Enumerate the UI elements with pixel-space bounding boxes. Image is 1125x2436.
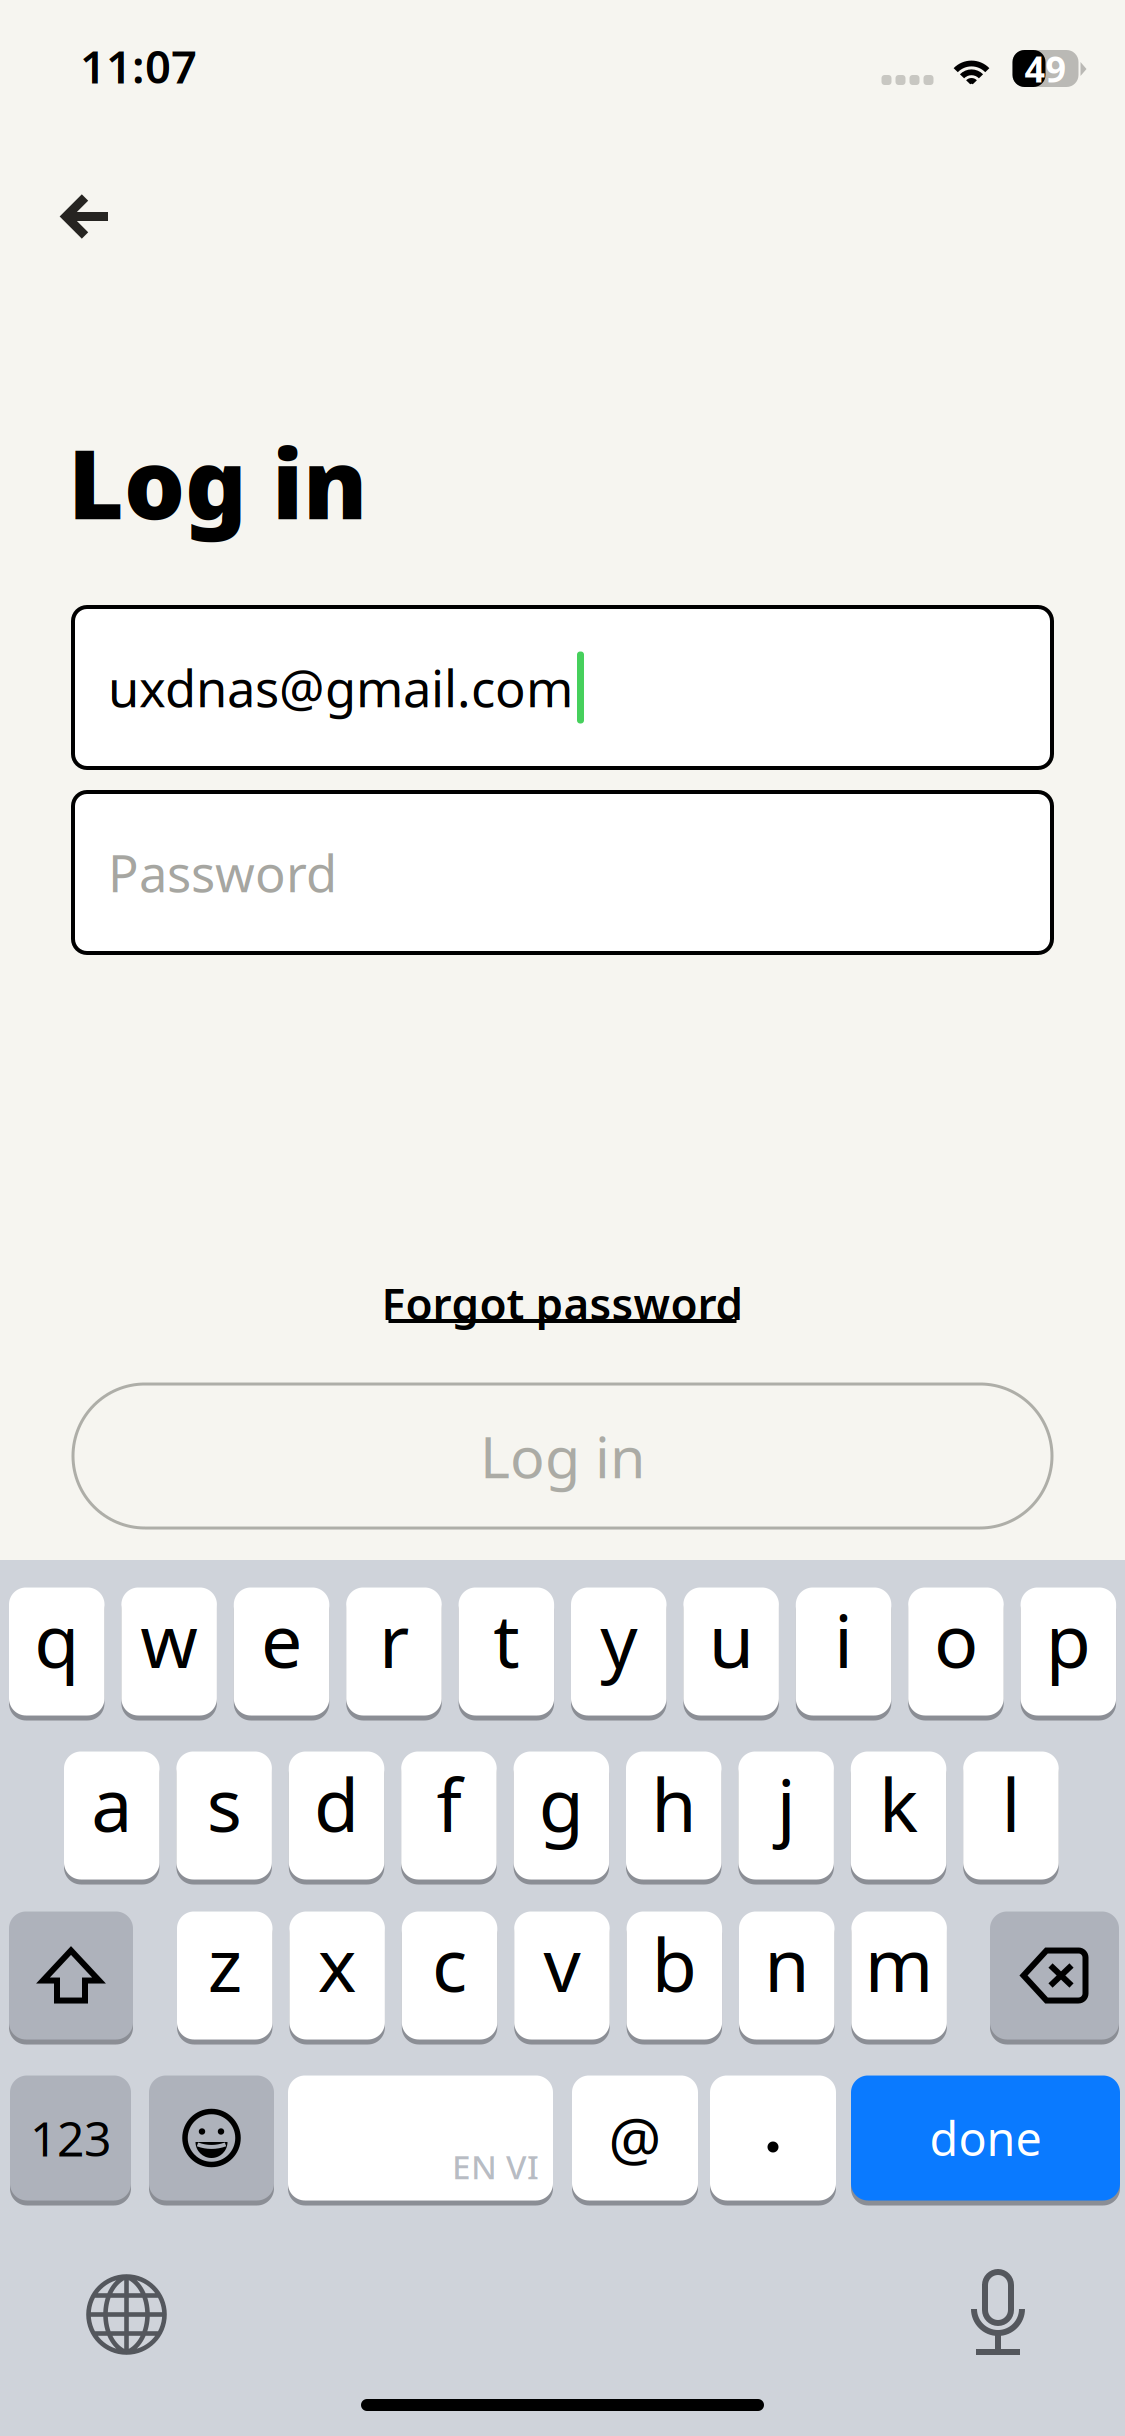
button[interactable]: u [683, 1585, 779, 1718]
staticText: k [879, 1755, 918, 1852]
button[interactable]: Period [710, 2073, 836, 2203]
staticText: a [91, 1755, 132, 1852]
button[interactable]: a [64, 1749, 159, 1882]
staticText: c [432, 1915, 467, 2012]
staticText: m [865, 1915, 934, 2012]
staticText: s [207, 1755, 242, 1852]
staticText: t [493, 1591, 519, 1688]
button[interactable]: j [738, 1749, 834, 1882]
staticText: p [1046, 1591, 1091, 1688]
button[interactable]: Forgot password [300, 1277, 825, 1333]
button[interactable]: v [514, 1909, 610, 2042]
staticText: q [34, 1591, 79, 1688]
button[interactable]: r [346, 1585, 442, 1718]
staticText: l [1001, 1755, 1020, 1852]
button[interactable]: t [459, 1585, 554, 1718]
staticText: y [600, 1591, 637, 1688]
button[interactable]: Shift [9, 1909, 133, 2042]
staticText: 49 [1024, 45, 1066, 92]
button[interactable]: Delete [990, 1909, 1119, 2042]
staticText: done [929, 2107, 1041, 2169]
button[interactable]: d [289, 1749, 384, 1882]
staticText: Forgot password [381, 1274, 743, 1332]
staticText: n [764, 1915, 809, 2012]
button[interactable]: q [9, 1585, 104, 1718]
staticText: 123 [30, 2106, 111, 2170]
staticText: d [314, 1755, 359, 1852]
staticText: x [318, 1915, 357, 2012]
button[interactable]: Space [288, 2073, 553, 2203]
button[interactable]: x [289, 1909, 385, 2042]
button[interactable]: @ [572, 2073, 698, 2203]
button[interactable]: Log in [73, 1384, 1052, 1528]
staticText: u [709, 1591, 754, 1688]
button[interactable]: y [571, 1585, 666, 1718]
button[interactable]: n [739, 1909, 834, 2042]
staticText: b [652, 1915, 697, 2012]
staticText: Log in [480, 1418, 645, 1494]
button[interactable]: g [514, 1749, 609, 1882]
button[interactable]: Emoji [149, 2073, 274, 2203]
button[interactable]: l [963, 1749, 1059, 1882]
staticText: e [261, 1591, 302, 1688]
button[interactable]: p [1021, 1585, 1116, 1718]
staticText: 11:07 [80, 36, 197, 96]
button[interactable]: h [626, 1749, 721, 1882]
button[interactable]: z [177, 1909, 272, 2042]
staticText: w [140, 1591, 198, 1688]
staticText: o [934, 1591, 978, 1688]
button[interactable]: m [851, 1909, 947, 2042]
button[interactable]: Next keyboard [86, 2274, 167, 2355]
staticText: f [436, 1755, 461, 1852]
staticText: v [543, 1915, 580, 2012]
button[interactable]: s [176, 1749, 272, 1882]
button[interactable]: o [908, 1585, 1004, 1718]
button[interactable]: Back [38, 169, 134, 265]
staticText: Log in [68, 418, 367, 546]
button[interactable]: f [401, 1749, 497, 1882]
button[interactable]: Dictate [970, 2269, 1026, 2355]
button[interactable]: done [851, 2073, 1120, 2203]
staticText: j [777, 1755, 796, 1852]
staticText: g [539, 1755, 584, 1852]
staticText: z [208, 1915, 242, 2012]
button[interactable]: i [796, 1585, 891, 1718]
staticText: h [651, 1755, 696, 1852]
button[interactable]: e [234, 1585, 329, 1718]
button[interactable]: k [851, 1749, 946, 1882]
staticText: uxdnas@gmail.com [108, 654, 573, 721]
staticText: i [834, 1591, 853, 1688]
button[interactable]: b [627, 1909, 722, 2042]
button[interactable]: w [121, 1585, 217, 1718]
button[interactable]: 123 [10, 2073, 131, 2203]
staticText: @ [608, 2099, 661, 2177]
staticText: Password [108, 839, 337, 906]
button[interactable]: c [402, 1909, 497, 2042]
staticText: EN VI [452, 2144, 539, 2188]
staticText: r [379, 1591, 409, 1688]
